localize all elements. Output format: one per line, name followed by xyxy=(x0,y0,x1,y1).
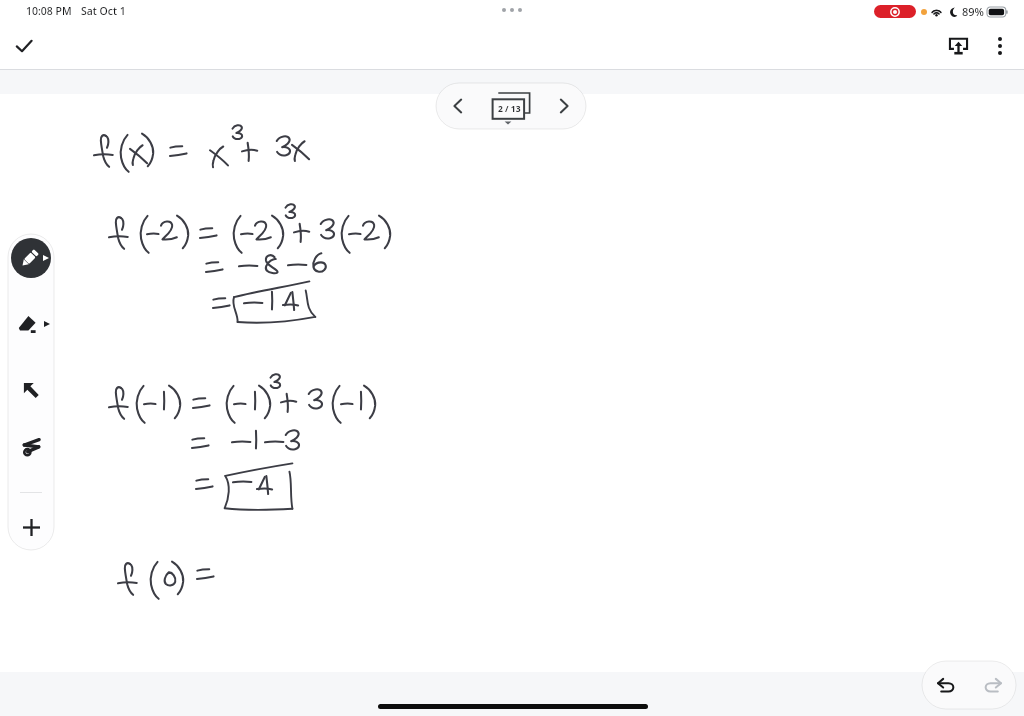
staticText: 2 / 13 xyxy=(498,103,521,115)
button[interactable]: Done xyxy=(7,29,41,63)
staticText: 10:08 PM xyxy=(26,4,72,18)
button[interactable]: Pages xyxy=(480,83,542,129)
button[interactable]: Pen xyxy=(11,238,51,278)
button[interactable]: Next page xyxy=(542,83,586,129)
button[interactable]: Select xyxy=(11,370,51,410)
staticText: Sat Oct 1 xyxy=(81,4,126,18)
button[interactable]: Add tool xyxy=(11,507,51,547)
staticText: 89% xyxy=(962,4,984,19)
button[interactable]: Undo xyxy=(922,661,969,709)
button[interactable]: Present xyxy=(940,28,976,64)
button[interactable]: Previous page xyxy=(436,83,480,129)
button[interactable]: Redo xyxy=(969,661,1016,709)
button[interactable]: More options xyxy=(982,28,1018,64)
button[interactable]: Eraser xyxy=(11,304,51,344)
button[interactable]: Lasso xyxy=(11,426,51,466)
